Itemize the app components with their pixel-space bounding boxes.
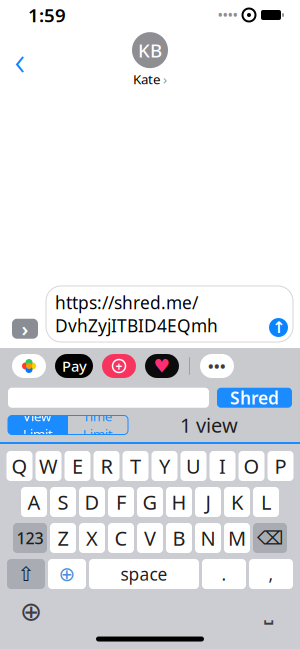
staticText: B [172, 525, 185, 551]
staticText: View Limit [23, 407, 53, 443]
button[interactable]: F [108, 487, 134, 517]
staticText: 123 [16, 527, 43, 549]
staticText: D [84, 489, 99, 515]
staticText: ‹ [14, 33, 25, 86]
staticText: G [142, 489, 157, 515]
button[interactable]: Apple Pay [55, 354, 93, 378]
staticText: Z [57, 525, 68, 551]
button[interactable]: C [108, 523, 134, 553]
button[interactable]: Show apps [12, 315, 38, 342]
button[interactable]: Photos [12, 354, 46, 378]
staticText: , [268, 562, 273, 585]
staticText: . [221, 562, 226, 585]
staticText: J [205, 489, 210, 515]
button[interactable]: N [195, 523, 221, 553]
button[interactable]: B [166, 523, 192, 553]
staticText: 1:59 [28, 3, 66, 27]
staticText: space [120, 562, 167, 585]
staticText: ⇧ [17, 563, 34, 585]
staticText: A [27, 489, 40, 515]
staticText: ⊕ [20, 596, 42, 627]
staticText: K [231, 489, 243, 515]
button[interactable]: Shift [7, 559, 45, 589]
button[interactable]: M [224, 523, 250, 553]
staticText: P [274, 453, 286, 479]
staticText: H [171, 489, 186, 515]
button[interactable]: G [137, 487, 163, 517]
staticText: M [228, 525, 246, 551]
staticText: I [219, 453, 226, 479]
staticText: Kate [133, 70, 161, 88]
staticText: T [130, 453, 141, 479]
button[interactable]: Search GIFs [102, 354, 136, 378]
staticText: X [86, 525, 98, 551]
button[interactable]: X [79, 523, 105, 553]
button[interactable]: Shred [217, 388, 292, 408]
button[interactable]: Shred [145, 354, 179, 378]
staticText: L [261, 489, 271, 515]
staticText: Pay [62, 356, 87, 376]
button[interactable]: P [267, 451, 293, 481]
button[interactable]: U [180, 451, 206, 481]
staticText: Y [159, 453, 170, 479]
staticText: V [144, 525, 156, 551]
staticText: E [72, 453, 83, 479]
staticText: https://shred.me/ DvhZyjITBID4EQmh [55, 291, 218, 337]
staticText: Time Limit [83, 407, 113, 443]
staticText: S [57, 489, 68, 515]
button[interactable]: space [89, 559, 199, 589]
button[interactable]: E [64, 451, 90, 481]
staticText: Q [11, 453, 27, 479]
button[interactable]: Time Limit [68, 415, 128, 434]
button[interactable]: Z [50, 523, 76, 553]
staticText: ♥ [153, 355, 170, 377]
button[interactable]: . [202, 559, 246, 589]
staticText: ••• [208, 356, 226, 376]
button[interactable]: R [93, 451, 119, 481]
button[interactable]: J [195, 487, 221, 517]
button[interactable]: 123 [13, 523, 47, 553]
staticText: R [100, 453, 112, 479]
staticText: ↑ [272, 318, 285, 337]
button[interactable]: A [21, 487, 47, 517]
staticText: F [116, 489, 126, 515]
staticText: C [114, 525, 127, 551]
button[interactable]: Back [0, 38, 40, 82]
staticText: W [39, 453, 58, 479]
staticText: 1 view [180, 412, 238, 438]
button[interactable]: I [209, 451, 235, 481]
button[interactable]: View Limit [8, 415, 68, 434]
button[interactable]: K [224, 487, 250, 517]
button[interactable]: Dictate [252, 594, 286, 628]
staticText: O [243, 453, 259, 479]
button[interactable]: O [238, 451, 264, 481]
button[interactable]: S [50, 487, 76, 517]
staticText: Shred [230, 386, 279, 409]
staticText: ⎵ [264, 600, 274, 623]
button[interactable]: H [166, 487, 192, 517]
staticText: ⌫ [257, 527, 283, 549]
button[interactable]: , [249, 559, 293, 589]
button[interactable]: D [79, 487, 105, 517]
staticText: › [163, 70, 167, 88]
button[interactable]: Q [6, 451, 32, 481]
staticText: •••• [218, 7, 238, 23]
staticText: › [21, 315, 28, 342]
button[interactable]: L [253, 487, 279, 517]
button[interactable]: Y [151, 451, 177, 481]
button[interactable]: More apps [200, 354, 234, 378]
button[interactable]: Send [269, 318, 288, 337]
staticText: + [115, 358, 122, 374]
button[interactable]: Delete [253, 523, 287, 553]
staticText: ⊕ [58, 563, 75, 585]
button[interactable]: T [122, 451, 148, 481]
button[interactable]: W [35, 451, 61, 481]
staticText: N [200, 525, 215, 551]
button[interactable]: Next keyboard [48, 559, 86, 589]
button[interactable]: Globe [14, 594, 48, 628]
button[interactable]: V [137, 523, 163, 553]
staticText: KB [138, 38, 162, 63]
staticText: U [186, 453, 201, 479]
